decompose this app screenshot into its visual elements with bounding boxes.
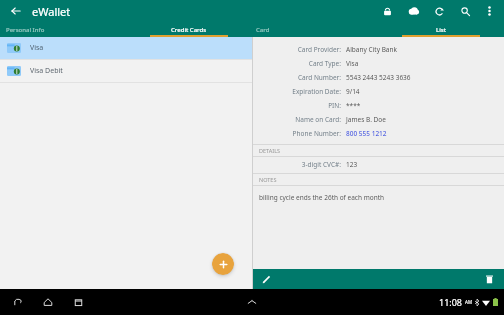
staticText: Card bbox=[256, 26, 270, 34]
staticText: Visa bbox=[346, 59, 359, 68]
button[interactable]: Name on Card: bbox=[253, 112, 504, 126]
button[interactable]: Back bbox=[7, 2, 25, 20]
button[interactable]: PIN: bbox=[253, 98, 504, 112]
staticText: PIN: bbox=[253, 101, 341, 110]
button[interactable]: Home bbox=[40, 294, 56, 310]
button[interactable]: Show notifications bbox=[244, 294, 260, 310]
staticText: 3-digit CVC#: bbox=[253, 160, 341, 169]
staticText: Visa Debit bbox=[30, 66, 63, 76]
button[interactable]: Card bbox=[252, 22, 378, 37]
staticText: eWallet bbox=[32, 4, 71, 19]
button[interactable]: Delete bbox=[482, 272, 496, 286]
staticText: List bbox=[436, 26, 447, 34]
button[interactable]: Personal Info bbox=[0, 22, 126, 37]
button[interactable]: More options bbox=[481, 3, 497, 19]
staticText: Visa bbox=[30, 43, 44, 53]
button[interactable]: Card Number: bbox=[253, 70, 504, 84]
button[interactable]: Credit Cards bbox=[126, 22, 252, 37]
staticText: **** bbox=[346, 101, 361, 110]
staticText: Card Number: bbox=[253, 73, 341, 82]
staticText: 800 555 1212 bbox=[346, 129, 387, 138]
button[interactable]: Visa bbox=[0, 37, 252, 59]
staticText: 5543 2443 5243 3636 bbox=[346, 73, 411, 82]
button[interactable]: Card Provider: bbox=[253, 42, 504, 56]
button[interactable]: Phone Number: bbox=[253, 126, 504, 140]
button[interactable]: Refresh bbox=[431, 3, 447, 19]
staticText: Personal Info bbox=[6, 26, 45, 34]
staticText: Albany City Bank bbox=[346, 45, 397, 54]
staticText: 11:08 bbox=[439, 296, 463, 308]
button[interactable]: Card Type: bbox=[253, 56, 504, 70]
button[interactable]: List bbox=[378, 22, 504, 37]
staticText: Credit Cards bbox=[171, 26, 207, 34]
button[interactable]: 3-digit CVC#: bbox=[253, 157, 504, 171]
button[interactable]: Recent apps bbox=[70, 294, 86, 310]
staticText: 123 bbox=[346, 160, 358, 169]
button[interactable]: Cloud sync bbox=[405, 3, 421, 19]
staticText: Card Type: bbox=[253, 59, 341, 68]
staticText: AM bbox=[465, 299, 472, 305]
button[interactable]: Expiration Date: bbox=[253, 84, 504, 98]
staticText: Phone Number: bbox=[253, 129, 341, 138]
staticText: billing cycle ends the 26th of each mont… bbox=[259, 193, 385, 202]
button[interactable]: Edit bbox=[259, 272, 273, 286]
staticText: James B. Doe bbox=[346, 115, 386, 124]
staticText: 9/14 bbox=[346, 87, 360, 96]
button[interactable]: Lock bbox=[379, 3, 395, 19]
staticText: DETAILS bbox=[259, 147, 281, 154]
button[interactable]: Add card bbox=[212, 253, 234, 275]
button[interactable]: Visa Debit bbox=[0, 60, 252, 82]
staticText: Expiration Date: bbox=[253, 87, 341, 96]
staticText: Card Provider: bbox=[253, 45, 341, 54]
button[interactable]: Search bbox=[457, 3, 473, 19]
button[interactable]: Back bbox=[10, 294, 26, 310]
staticText: NOTES bbox=[259, 176, 277, 183]
staticText: Name on Card: bbox=[253, 115, 341, 124]
